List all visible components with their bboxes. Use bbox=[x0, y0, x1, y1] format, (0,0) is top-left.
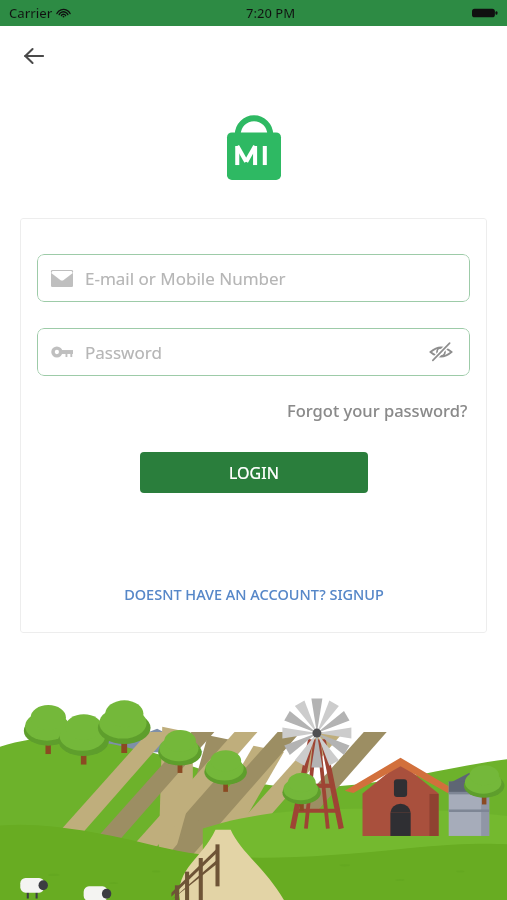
staticText: DOESNT HAVE AN ACCOUNT? SIGNUP bbox=[124, 584, 384, 604]
staticText: Carrier bbox=[9, 4, 53, 22]
button[interactable]: Password bbox=[37, 328, 470, 376]
button[interactable]: E-mail or Mobile Number bbox=[37, 254, 470, 302]
button[interactable]: LOGIN bbox=[140, 452, 368, 493]
staticText: LOGIN bbox=[229, 462, 279, 484]
staticText: E-mail or Mobile Number bbox=[85, 267, 286, 290]
staticText: Forgot your password? bbox=[287, 399, 468, 421]
staticText: Password bbox=[85, 341, 424, 364]
button[interactable]: Back bbox=[12, 34, 56, 78]
button[interactable]: Forgot your password? bbox=[285, 396, 470, 424]
button[interactable]: Show password bbox=[424, 335, 458, 369]
button[interactable]: DOESNT HAVE AN ACCOUNT? SIGNUP bbox=[120, 581, 388, 607]
staticText: 7:20 PM bbox=[246, 4, 296, 22]
